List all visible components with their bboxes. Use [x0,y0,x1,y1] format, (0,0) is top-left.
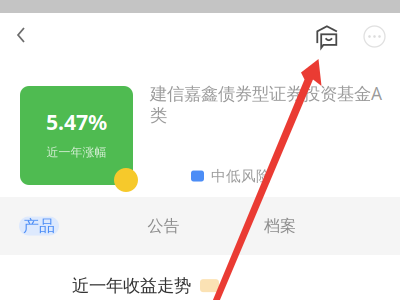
button[interactable]: 公告 [107,216,220,235]
staticText: 建信嘉鑫债券型证券投资基金A类 [150,82,382,126]
staticText: 近一年收益走势 [72,275,191,296]
staticText: 近一年涨幅 [46,145,106,159]
button[interactable]: Customer service [305,13,349,57]
staticText: 5.47% [46,107,107,136]
button[interactable]: 档案 [220,216,340,235]
staticText: 中低风险 [211,167,271,185]
button[interactable]: More [349,13,400,57]
button[interactable]: Back [0,13,42,57]
staticText: 公告 [147,216,179,236]
staticText: 档案 [264,216,296,236]
staticText: 产品 [23,216,55,236]
button[interactable]: 产品 [19,216,107,235]
